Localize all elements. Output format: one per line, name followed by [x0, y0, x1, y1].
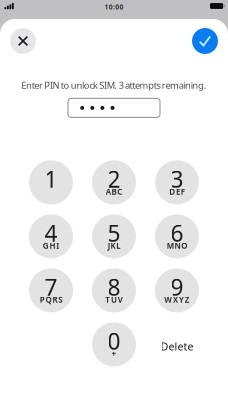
staticText: D: [169, 186, 175, 197]
staticText: Q: [46, 294, 52, 305]
staticText: W: [164, 294, 172, 305]
button[interactable]: 0: [92, 322, 136, 366]
staticText: 10:00: [105, 2, 123, 11]
staticText: E: [176, 186, 180, 197]
staticText: Enter PIN to unlock SIM. 3 attempts rema…: [21, 79, 207, 91]
button[interactable]: Confirm PIN: [192, 28, 218, 54]
staticText: +: [111, 348, 116, 359]
staticText: P: [40, 294, 45, 305]
staticText: J: [108, 240, 110, 251]
button[interactable]: 5: [92, 214, 136, 258]
button[interactable]: 7: [29, 268, 73, 312]
staticText: V: [118, 294, 123, 305]
staticText: O: [181, 240, 187, 251]
staticText: Y: [179, 294, 184, 305]
staticText: 4: [44, 218, 57, 248]
button[interactable]: 4: [29, 214, 73, 258]
staticText: 2: [107, 164, 120, 194]
staticText: 3: [170, 164, 183, 194]
button[interactable]: 8: [92, 268, 136, 312]
staticText: 5: [107, 218, 120, 248]
staticText: 7: [44, 272, 57, 302]
staticText: Delete: [160, 339, 193, 353]
staticText: F: [181, 186, 185, 197]
staticText: 8: [107, 272, 120, 302]
button[interactable]: Close: [10, 28, 36, 54]
staticText: N: [174, 240, 180, 251]
staticText: A: [106, 186, 111, 197]
staticText: C: [117, 186, 122, 197]
staticText: 9: [170, 272, 183, 302]
staticText: 6: [170, 218, 183, 248]
staticText: G: [43, 240, 49, 251]
button[interactable]: 6: [155, 214, 199, 258]
staticText: K: [110, 240, 115, 251]
staticText: H: [49, 240, 55, 251]
button[interactable]: 2: [92, 160, 136, 204]
staticText: T: [105, 294, 110, 305]
staticText: 0: [107, 326, 120, 356]
staticText: X: [173, 294, 178, 305]
staticText: M: [167, 240, 174, 251]
staticText: I: [56, 240, 59, 251]
button[interactable]: 9: [155, 268, 199, 312]
button[interactable]: Delete: [155, 322, 199, 366]
staticText: U: [111, 294, 117, 305]
staticText: Z: [185, 294, 190, 305]
button[interactable]: 1: [29, 160, 73, 204]
staticText: B: [111, 186, 116, 197]
staticText: 1: [44, 164, 57, 194]
staticText: R: [52, 294, 57, 305]
button[interactable]: 3: [155, 160, 199, 204]
staticText: S: [58, 294, 62, 305]
staticText: L: [116, 240, 120, 251]
